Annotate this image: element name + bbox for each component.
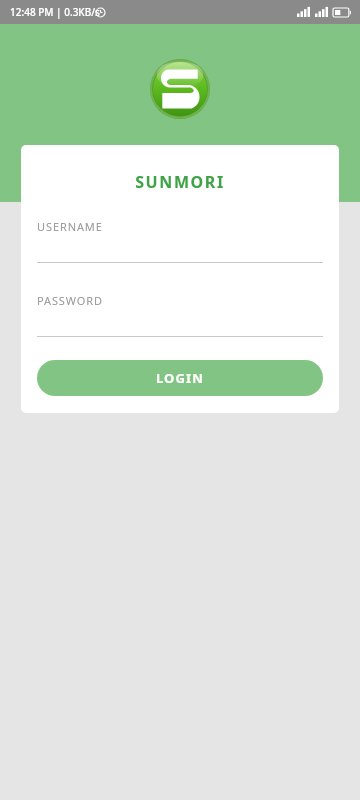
button[interactable]: LOGIN bbox=[37, 360, 323, 396]
other: Signal bbox=[315, 7, 328, 17]
staticText: LOGIN bbox=[156, 369, 204, 387]
other: Alarm bbox=[95, 7, 106, 18]
other: Sunmori logo bbox=[150, 59, 210, 119]
button[interactable]: PASSWORD bbox=[37, 293, 323, 337]
staticText: SUNMORI bbox=[21, 171, 339, 193]
button[interactable]: USERNAME bbox=[37, 219, 323, 263]
staticText: PASSWORD bbox=[37, 293, 103, 308]
staticText: 12:48 PM | 0.3KB/s bbox=[10, 5, 100, 19]
other: Signal bbox=[297, 7, 310, 17]
staticText: USERNAME bbox=[37, 219, 103, 234]
other: Battery bbox=[333, 8, 351, 17]
